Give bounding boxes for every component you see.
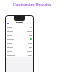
button[interactable] — [6, 45, 33, 49]
button[interactable] — [6, 25, 33, 29]
button[interactable] — [6, 33, 33, 37]
button[interactable] — [6, 37, 33, 41]
button[interactable] — [6, 53, 33, 57]
button[interactable] — [6, 49, 33, 53]
staticText: Customize Results — [0, 2, 64, 8]
button[interactable] — [6, 41, 33, 45]
button[interactable] — [6, 29, 33, 33]
button[interactable]: Back — [7, 22, 9, 24]
